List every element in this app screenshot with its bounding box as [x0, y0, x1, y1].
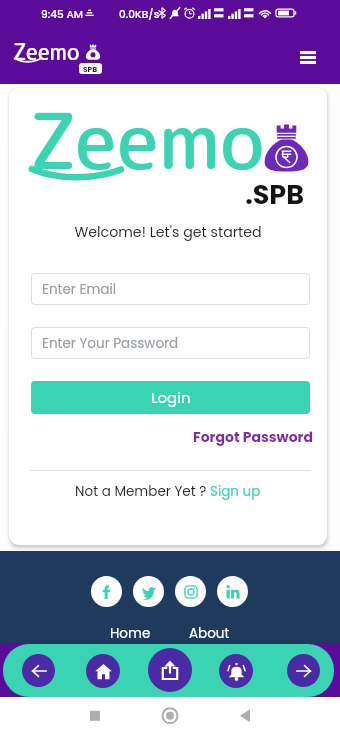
button[interactable]: Enter Email [31, 273, 310, 305]
staticText: SPB [83, 64, 98, 74]
button[interactable]: Back [22, 654, 55, 687]
staticText: Enter Email [42, 280, 117, 299]
button[interactable]: LinkedIn [217, 576, 248, 607]
button[interactable]: About [185, 624, 234, 643]
button[interactable]: Twitter [133, 576, 164, 607]
staticText: Login [151, 387, 191, 408]
staticText: Welcome! Let's get started [9, 222, 327, 242]
staticText: Forgot Password [193, 427, 314, 447]
staticText: Enter Your Password [42, 334, 179, 353]
staticText: Sign up [210, 482, 261, 501]
button[interactable]: Home [106, 624, 155, 643]
staticText: .SPB [9, 176, 304, 214]
staticText: Zeemo [13, 36, 80, 67]
button[interactable]: Instagram [175, 576, 206, 607]
staticText: Not a Member Yet ? [75, 482, 210, 501]
button[interactable]: Enter Your Password [31, 327, 310, 359]
button[interactable]: Facebook [91, 576, 122, 607]
staticText: 0.0KB/s [119, 7, 160, 22]
staticText: Home [110, 624, 151, 643]
staticText: 9:45 AM [41, 7, 84, 22]
button[interactable]: Forward [287, 654, 320, 687]
button[interactable]: Sign up [210, 482, 261, 501]
button[interactable]: Menu [290, 40, 325, 75]
button[interactable]: Share [148, 648, 192, 692]
button[interactable]: Notifications [219, 654, 253, 688]
staticText: About [189, 624, 230, 643]
button[interactable]: Forgot Password [183, 425, 314, 449]
button[interactable]: Login [31, 381, 310, 414]
staticText: Zeemo [29, 88, 265, 194]
button[interactable]: Home [86, 654, 120, 688]
